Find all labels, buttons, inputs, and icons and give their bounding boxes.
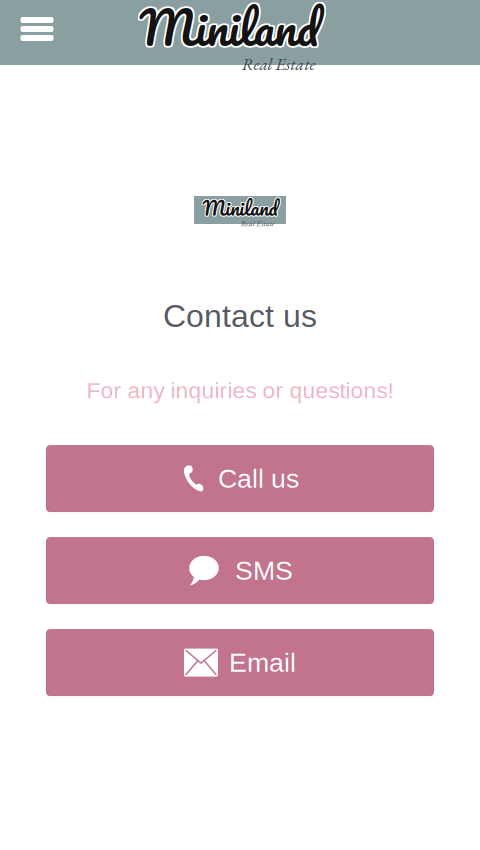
button[interactable]: SMS xyxy=(46,537,434,604)
staticText: Miniland xyxy=(141,0,320,68)
staticText: Miniland xyxy=(139,0,318,65)
staticText: Miniland xyxy=(202,191,277,224)
button[interactable]: Open menu xyxy=(11,3,63,55)
staticText: Miniland xyxy=(203,192,278,225)
staticText: Contact us xyxy=(163,298,317,334)
staticText: Miniland xyxy=(203,191,278,223)
staticText: Email xyxy=(229,648,296,677)
staticText: Miniland xyxy=(141,0,320,66)
staticText: Miniland xyxy=(138,0,317,68)
staticText: Miniland xyxy=(138,0,317,66)
button[interactable]: Email xyxy=(46,629,434,696)
staticText: Miniland xyxy=(202,192,277,225)
staticText: Miniland xyxy=(202,192,277,225)
staticText: Miniland xyxy=(141,0,320,65)
staticText: Real Estate xyxy=(240,218,274,229)
staticText: Real Estate xyxy=(241,52,315,75)
staticText: Miniland xyxy=(138,0,317,65)
staticText: Miniland xyxy=(202,191,277,223)
button[interactable]: Call us xyxy=(46,445,434,512)
staticText: Miniland xyxy=(139,0,318,68)
staticText: Miniland xyxy=(139,0,318,66)
staticText: SMS xyxy=(235,556,293,585)
staticText: Miniland xyxy=(202,191,277,223)
staticText: For any inquiries or questions! xyxy=(86,378,393,403)
staticText: Miniland xyxy=(202,191,277,224)
staticText: Miniland xyxy=(203,191,278,224)
staticText: Call us xyxy=(218,464,299,493)
